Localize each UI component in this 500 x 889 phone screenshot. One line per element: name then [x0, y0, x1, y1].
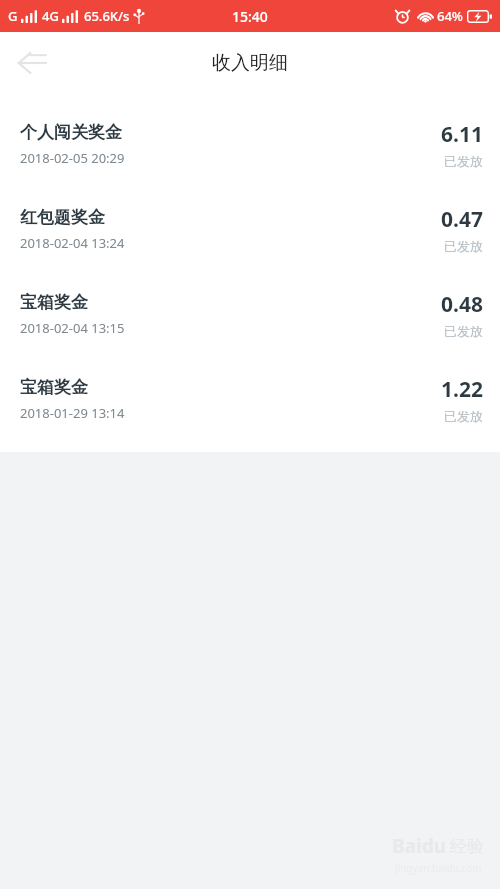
staticText: 已发放	[444, 323, 483, 339]
staticText: 已发放	[444, 238, 483, 254]
staticText: 64%	[437, 7, 463, 25]
staticText: 4G	[42, 7, 59, 25]
staticText: 已发放	[444, 408, 483, 424]
staticText: 2018-02-05 20:29	[20, 149, 125, 167]
staticText: 2018-02-04 13:24	[20, 234, 125, 252]
staticText: 宝箱奖金	[20, 377, 88, 398]
staticText: 2018-02-04 13:15	[20, 319, 125, 337]
staticText: 0.48	[441, 290, 483, 319]
button[interactable]: 红包题奖金	[0, 187, 500, 272]
staticText: Baidu	[392, 833, 447, 859]
staticText: 收入明细	[212, 51, 288, 75]
staticText: 2018-01-29 13:14	[20, 404, 125, 422]
staticText: 个人闯关奖金	[20, 122, 122, 143]
staticText: 0.47	[441, 205, 483, 234]
button[interactable]: 个人闯关奖金	[0, 102, 500, 187]
button[interactable]: 宝箱奖金	[0, 357, 500, 442]
button[interactable]: 宝箱奖金	[0, 272, 500, 357]
staticText: G	[8, 7, 18, 25]
staticText: 已发放	[444, 153, 483, 169]
staticText: 15:40	[232, 7, 268, 26]
staticText: 红包题奖金	[20, 207, 105, 228]
staticText: 宝箱奖金	[20, 292, 88, 313]
staticText: 经验	[450, 836, 484, 857]
staticText: 6.11	[441, 120, 483, 149]
staticText: 1.22	[441, 375, 483, 404]
staticText: 65.6K/s	[84, 7, 130, 25]
button[interactable]: Back	[8, 39, 56, 87]
